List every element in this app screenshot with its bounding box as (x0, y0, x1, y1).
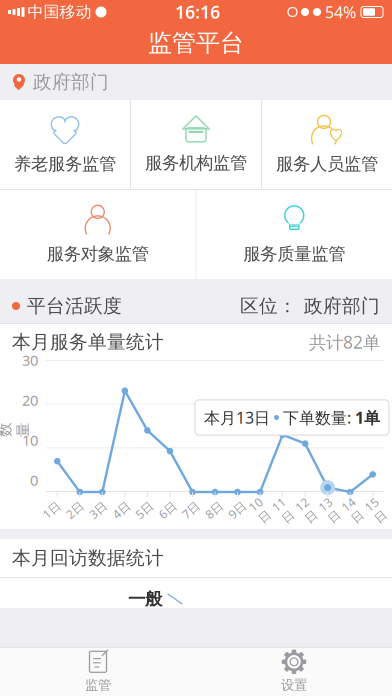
staticText: 一般 (128, 588, 162, 610)
staticText: 本月回访数据统计 (12, 546, 164, 569)
staticText: 政府部门 (304, 294, 380, 317)
staticText: 设置 (281, 677, 307, 693)
staticText: 10 (22, 430, 38, 450)
staticText: 54% (325, 1, 356, 23)
staticText: 11日 (277, 495, 291, 525)
staticText: 5日 (135, 502, 154, 518)
staticText: 4日 (112, 502, 131, 518)
staticText: 13日 (323, 495, 337, 525)
staticText: 共计82单 (309, 330, 380, 353)
button[interactable]: 服务人员监管 (262, 100, 392, 189)
button[interactable]: 监管 (0, 647, 196, 695)
staticText: 服务人员监管 (276, 153, 378, 175)
staticText: 1日 (42, 502, 61, 518)
staticText: 区位： (240, 294, 297, 317)
staticText: 平台活跃度 (27, 294, 122, 317)
staticText: 养老服务监管 (14, 153, 116, 175)
staticText: 15日 (369, 495, 383, 525)
button[interactable]: 养老服务监管 (0, 100, 130, 189)
staticText: 30 (22, 350, 38, 370)
button[interactable]: 服务对象监管 (0, 190, 195, 279)
staticText: 中国移动 (27, 2, 91, 22)
staticText: 服务机构监管 (145, 152, 247, 174)
staticText: 16:16 (175, 0, 220, 23)
staticText: 监管平台 (148, 28, 244, 58)
staticText: 本月13日 (204, 407, 270, 428)
staticText: 政府部门 (33, 70, 109, 93)
staticText: 9日 (228, 502, 247, 518)
staticText: 下单数量: (283, 407, 351, 428)
staticText: 2日 (65, 502, 84, 518)
staticText: 监管 (85, 677, 111, 693)
staticText: 0 (30, 470, 38, 490)
button[interactable]: 服务质量监管 (196, 190, 392, 279)
staticText: 1单 (355, 407, 380, 428)
staticText: 6日 (158, 502, 177, 518)
staticText: 服务对象监管 (47, 243, 149, 265)
button[interactable]: 服务机构监管 (131, 100, 261, 189)
staticText: 8日 (204, 502, 223, 518)
staticText: 7日 (181, 502, 200, 518)
staticText: 10日 (253, 495, 267, 525)
staticText: 14日 (346, 495, 360, 525)
staticText: 服务质量监管 (243, 243, 345, 265)
staticText: 数量 (6, 411, 21, 447)
button[interactable]: 设置 (196, 647, 392, 695)
staticText: 本月服务单量统计 (12, 330, 164, 353)
staticText: 3日 (88, 502, 107, 518)
staticText: 12日 (300, 495, 314, 525)
staticText: 20 (22, 390, 38, 410)
